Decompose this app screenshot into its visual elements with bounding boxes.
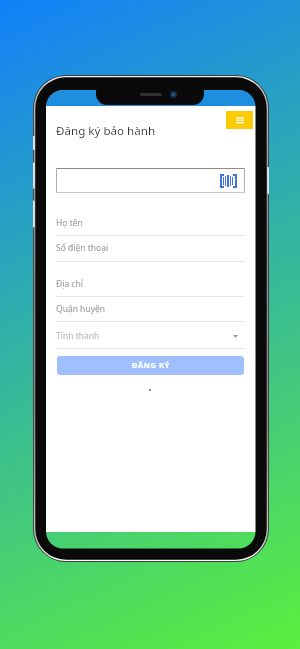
button[interactable]: Scan barcode bbox=[56, 168, 245, 193]
staticText: Số điện thoại bbox=[56, 242, 109, 254]
staticText: Quận huyện bbox=[56, 303, 106, 315]
staticText: Tỉnh thành bbox=[56, 330, 100, 342]
staticText: ĐĂNG KÝ bbox=[132, 360, 170, 370]
staticText: Họ tên bbox=[56, 217, 83, 229]
staticText: Địa chỉ bbox=[56, 278, 83, 290]
other: Scan barcode bbox=[220, 174, 237, 188]
staticText: Đăng ký bảo hành bbox=[56, 123, 156, 139]
button[interactable]: Menu bbox=[226, 111, 253, 129]
button[interactable]: ĐĂNG KÝ bbox=[57, 356, 244, 375]
